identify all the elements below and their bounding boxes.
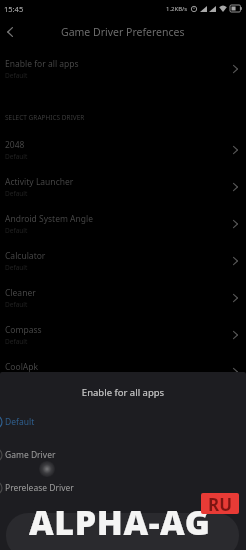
staticText: Cleaner bbox=[5, 287, 36, 299]
button[interactable]: CoolApk bbox=[0, 353, 246, 390]
staticText: Default bbox=[5, 337, 28, 346]
staticText: Default bbox=[5, 226, 28, 235]
staticText: RU bbox=[208, 493, 233, 514]
button[interactable]: Android System Angle bbox=[0, 205, 246, 242]
button[interactable]: Cleaner bbox=[0, 279, 246, 316]
staticText: Default bbox=[5, 152, 28, 161]
staticText: 1.2KB/s bbox=[166, 5, 188, 13]
staticText: Activity Launcher bbox=[5, 176, 74, 188]
staticText: CoolApk bbox=[5, 361, 39, 373]
button[interactable]: Activity Launcher bbox=[0, 168, 246, 205]
staticText: Enable for all apps bbox=[0, 386, 246, 399]
staticText: Game Driver Preferences bbox=[61, 25, 185, 39]
staticText: Android System Angle bbox=[5, 213, 94, 225]
button[interactable]: Prerelease Driver bbox=[0, 471, 246, 504]
button[interactable]: 2048 bbox=[0, 131, 246, 168]
staticText: Calculator bbox=[5, 250, 46, 262]
staticText: 15:45 bbox=[4, 4, 24, 14]
staticText: Game Driver bbox=[5, 449, 56, 461]
staticText: Enable for all apps bbox=[5, 58, 79, 70]
button[interactable]: Back bbox=[0, 21, 22, 43]
staticText: Default bbox=[5, 300, 28, 309]
staticText: Default bbox=[5, 416, 35, 428]
staticText: Prerelease Driver bbox=[5, 482, 74, 494]
staticText: Compass bbox=[5, 324, 42, 336]
staticText: Default bbox=[5, 189, 28, 198]
staticText: Default bbox=[5, 263, 28, 272]
staticText: Default bbox=[5, 71, 28, 80]
button[interactable]: Compass bbox=[0, 316, 246, 353]
staticText: ALPHA-AG bbox=[29, 499, 211, 545]
button[interactable]: Calculator bbox=[0, 242, 246, 279]
button[interactable]: Enable for all apps bbox=[0, 50, 246, 87]
button[interactable]: Game Driver bbox=[0, 438, 246, 471]
staticText: SELECT GRAPHICS DRIVER bbox=[5, 113, 85, 122]
staticText: 2048 bbox=[5, 139, 25, 151]
button[interactable]: Default bbox=[0, 405, 246, 438]
